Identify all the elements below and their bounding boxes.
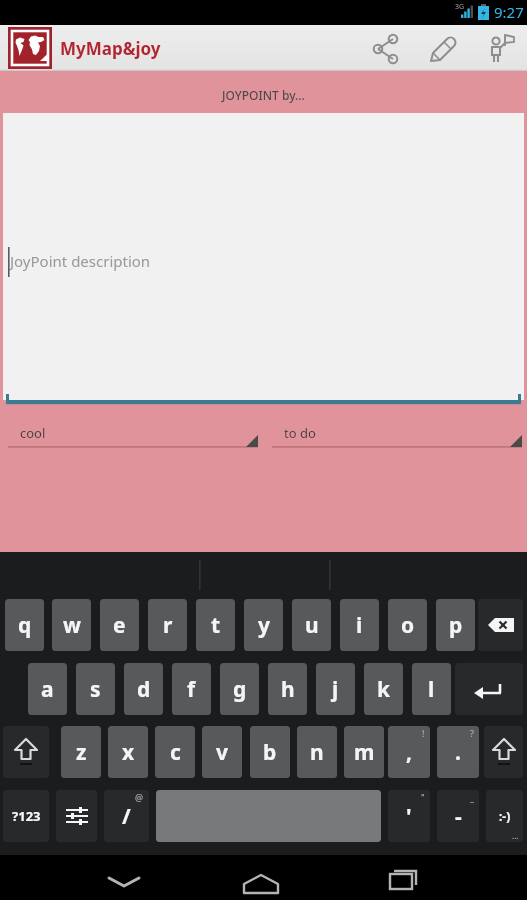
staticText: z [76,738,87,767]
button[interactable] [100,861,148,895]
button[interactable]: x [108,726,148,778]
button[interactable]: v [202,726,242,778]
button[interactable] [478,33,522,65]
button[interactable] [56,790,97,842]
button[interactable] [420,33,464,65]
staticText: u [305,611,319,640]
staticText: ?123 [12,807,41,825]
staticText: h [281,675,295,704]
button[interactable]: s [76,663,115,715]
button[interactable]: t [196,599,235,651]
staticText: m [354,738,375,767]
staticText: ... [512,830,519,841]
button[interactable]: ' [388,790,430,842]
button[interactable]: u [292,599,331,651]
staticText: d [137,675,151,704]
button[interactable]: d [124,663,163,715]
staticText: :-) [499,808,511,824]
staticText: q [18,611,32,640]
button[interactable]: q [5,599,44,651]
button[interactable] [484,726,523,778]
button[interactable]: e [100,599,139,651]
button[interactable]: y [244,599,283,651]
button[interactable]: ?123 [3,790,49,842]
staticText: n [310,738,324,767]
staticText: - [455,802,462,831]
staticText: " [421,791,425,803]
button[interactable]: , [388,726,430,778]
staticText: l [428,675,435,704]
button[interactable]: to do [272,417,522,449]
button[interactable] [362,31,406,67]
staticText: x [122,738,135,767]
staticText: 3G [455,2,465,12]
staticText: b [263,738,277,767]
staticText: w [63,611,81,640]
button[interactable]: - [437,790,479,842]
button[interactable]: . [437,726,479,778]
button[interactable] [237,861,285,895]
staticText: JoyPoint description [10,251,151,271]
staticText: g [233,675,247,704]
staticText: . [455,738,461,767]
button[interactable]: c [155,726,195,778]
button[interactable]: w [52,599,91,651]
button[interactable] [478,599,523,651]
staticText: to do [284,424,316,442]
staticText: s [90,675,101,704]
staticText: c [170,738,181,767]
staticText: a [41,675,54,704]
staticText: ! [422,727,425,739]
staticText: v [216,738,228,767]
button[interactable]: j [316,663,355,715]
button[interactable]: r [148,599,187,651]
button[interactable]: h [268,663,307,715]
staticText: o [401,611,415,640]
staticText: 9:27 [494,2,524,22]
button[interactable]: g [220,663,259,715]
button[interactable]: k [364,663,403,715]
button[interactable]: :-) [486,790,523,842]
staticText: i [356,611,363,640]
button[interactable]: f [172,663,211,715]
staticText: MyMap&joy [60,37,161,60]
button[interactable]: p [436,599,475,651]
button[interactable] [3,726,49,778]
button[interactable]: JoyPoint description [3,113,524,400]
button[interactable] [377,861,425,895]
staticText: p [449,611,463,640]
staticText: @ [135,791,144,803]
button[interactable]: cool [8,417,258,449]
button[interactable]: a [28,663,67,715]
button[interactable]: m [344,726,384,778]
staticText: t [211,611,221,640]
button[interactable]: n [297,726,337,778]
staticText: k [377,675,391,704]
staticText: _ [470,791,474,803]
button[interactable]: i [340,599,379,651]
staticText: cool [20,424,46,442]
staticText: e [113,611,126,640]
staticText: r [163,611,173,640]
button[interactable] [455,663,523,715]
staticText: , [406,738,412,767]
staticText: f [187,675,196,704]
staticText: y [258,611,270,640]
staticText: ? [470,727,474,739]
staticText: j [332,675,339,704]
button[interactable]: o [388,599,427,651]
button[interactable]: b [250,726,290,778]
button[interactable]: l [412,663,451,715]
button[interactable]: / [104,790,149,842]
staticText: / [122,802,131,831]
button[interactable]: z [61,726,101,778]
staticText: JOYPOINT by... [222,87,305,103]
staticText: ' [406,802,412,831]
